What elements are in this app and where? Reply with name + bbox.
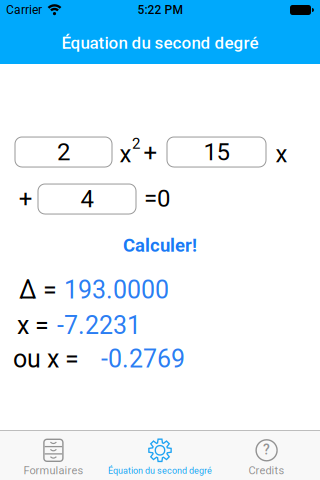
staticText: 4 [80, 185, 93, 213]
staticText: x [119, 140, 131, 168]
staticText: Équation du second degré [61, 33, 258, 53]
staticText: x = [17, 311, 49, 340]
button[interactable]: Calculer! [123, 235, 197, 256]
staticText: 2 [57, 138, 70, 166]
staticText: Calculer! [123, 235, 197, 256]
button[interactable]: Formulaires [0, 431, 107, 480]
staticText: x [275, 140, 287, 168]
staticText: + [143, 138, 157, 166]
staticText: Δ = [19, 275, 57, 305]
staticText: Formulaires [23, 464, 83, 477]
button[interactable]: Équation du second degré [107, 431, 213, 480]
staticText: Credits [249, 464, 285, 477]
staticText: 2 [132, 135, 140, 152]
staticText: 5:22 PM [137, 3, 182, 17]
button[interactable]: 15 [167, 137, 266, 167]
button[interactable]: ? [213, 431, 320, 480]
button[interactable]: 4 [38, 184, 136, 214]
staticText: 193.0000 [64, 275, 169, 305]
staticText: Carrier [6, 3, 42, 17]
button[interactable]: 2 [15, 137, 112, 167]
staticText: Équation du second degré [108, 465, 212, 476]
staticText: + [19, 184, 33, 212]
staticText: 15 [203, 138, 229, 166]
staticText: -0.2769 [101, 344, 185, 374]
staticText: ou x = [13, 344, 79, 374]
staticText: -7.2231 [57, 311, 141, 340]
staticText: =0 [144, 184, 170, 212]
staticText: ? [263, 442, 270, 458]
